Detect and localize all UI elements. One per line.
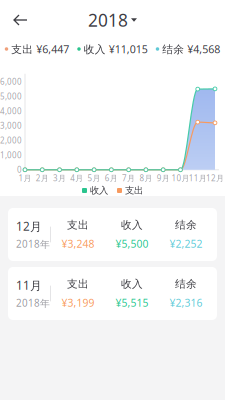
staticText: 8月: [139, 173, 152, 183]
staticText: 2018年: [16, 237, 50, 251]
staticText: 支出: [67, 277, 89, 291]
staticText: 5月: [88, 173, 101, 183]
staticText: 11月: [16, 277, 42, 293]
staticText: 结余: [175, 218, 197, 232]
button[interactable]: 2018: [80, 2, 145, 37]
staticText: 2018年: [16, 296, 50, 310]
staticText: 结余: [175, 277, 197, 291]
staticText: ¥5,515: [115, 296, 148, 310]
staticText: 6,000: [0, 76, 22, 87]
staticText: 3,000: [0, 120, 22, 131]
staticText: 收入: [87, 185, 108, 196]
staticText: 3月: [53, 173, 66, 183]
staticText: 10月: [171, 173, 189, 183]
staticText: 12月: [206, 173, 224, 183]
staticText: ¥3,199: [61, 296, 94, 310]
staticText: 4月: [70, 173, 83, 183]
staticText: 9月: [157, 173, 170, 183]
staticText: 2月: [36, 173, 49, 183]
staticText: 11月: [189, 173, 207, 183]
staticText: ¥2,316: [169, 296, 202, 310]
staticText: 12月: [16, 218, 42, 234]
staticText: ¥5,500: [115, 237, 148, 251]
staticText: ¥3,248: [61, 237, 94, 251]
staticText: 5,000: [0, 91, 22, 102]
staticText: 1月: [18, 173, 31, 183]
button[interactable]: 12月: [8, 208, 217, 261]
staticText: 支出 ¥6,447: [8, 42, 69, 56]
staticText: 收入 ¥11,015: [81, 42, 148, 56]
staticText: 结余 ¥4,568: [159, 42, 220, 56]
staticText: 4,000: [0, 106, 22, 116]
staticText: 7月: [122, 173, 135, 183]
staticText: 支出: [67, 218, 89, 232]
staticText: 2,000: [0, 135, 22, 146]
staticText: 0: [17, 164, 22, 175]
staticText: 支出: [122, 185, 143, 196]
staticText: 收入: [121, 277, 143, 291]
staticText: 收入: [121, 218, 143, 232]
staticText: 2018: [88, 8, 128, 31]
button[interactable]: 11月: [8, 267, 217, 320]
staticText: 1,000: [0, 150, 22, 160]
staticText: ¥2,252: [169, 237, 202, 251]
button[interactable]: Back: [6, 5, 35, 34]
staticText: 6月: [105, 173, 118, 183]
